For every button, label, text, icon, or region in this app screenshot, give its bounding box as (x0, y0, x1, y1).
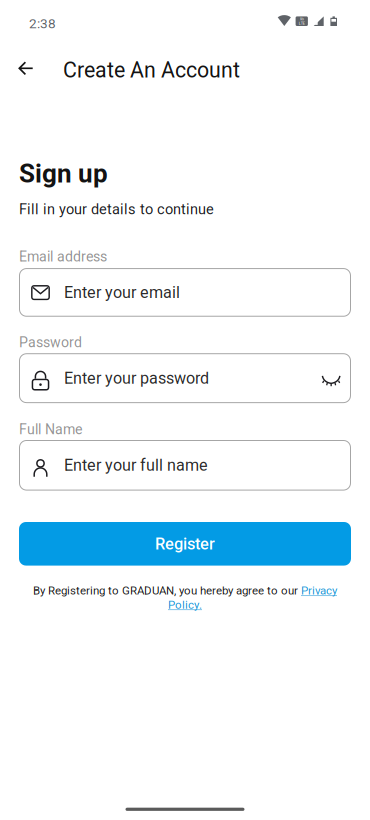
staticText: Enter your full name (64, 456, 208, 475)
staticText: Create An Account (63, 58, 240, 83)
staticText: By Registering to GRADUAN, you hereby ag… (33, 584, 301, 597)
button[interactable]: Privacy (301, 584, 337, 597)
staticText: 2:38 (29, 15, 56, 31)
staticText: Fill in your details to continue (19, 201, 214, 218)
staticText: Email address (19, 248, 107, 265)
staticText: Vo (300, 17, 304, 21)
staticText: Full Name (19, 421, 82, 438)
staticText: LTE (299, 21, 305, 26)
staticText: Sign up (19, 158, 108, 189)
button[interactable]: Enter your email (19, 268, 351, 317)
button[interactable]: Register (19, 522, 351, 566)
button[interactable]: Enter your password (19, 353, 351, 403)
button[interactable]: Back (11, 58, 40, 83)
button[interactable]: Enter your full name (19, 440, 351, 491)
staticText: Password (19, 334, 82, 351)
staticText: Privacy (301, 584, 337, 597)
staticText: Enter your email (64, 283, 180, 302)
staticText: Register (155, 534, 215, 553)
staticText: Enter your password (64, 369, 209, 388)
staticText: Policy. (168, 598, 202, 611)
button[interactable]: Policy. (168, 598, 202, 611)
